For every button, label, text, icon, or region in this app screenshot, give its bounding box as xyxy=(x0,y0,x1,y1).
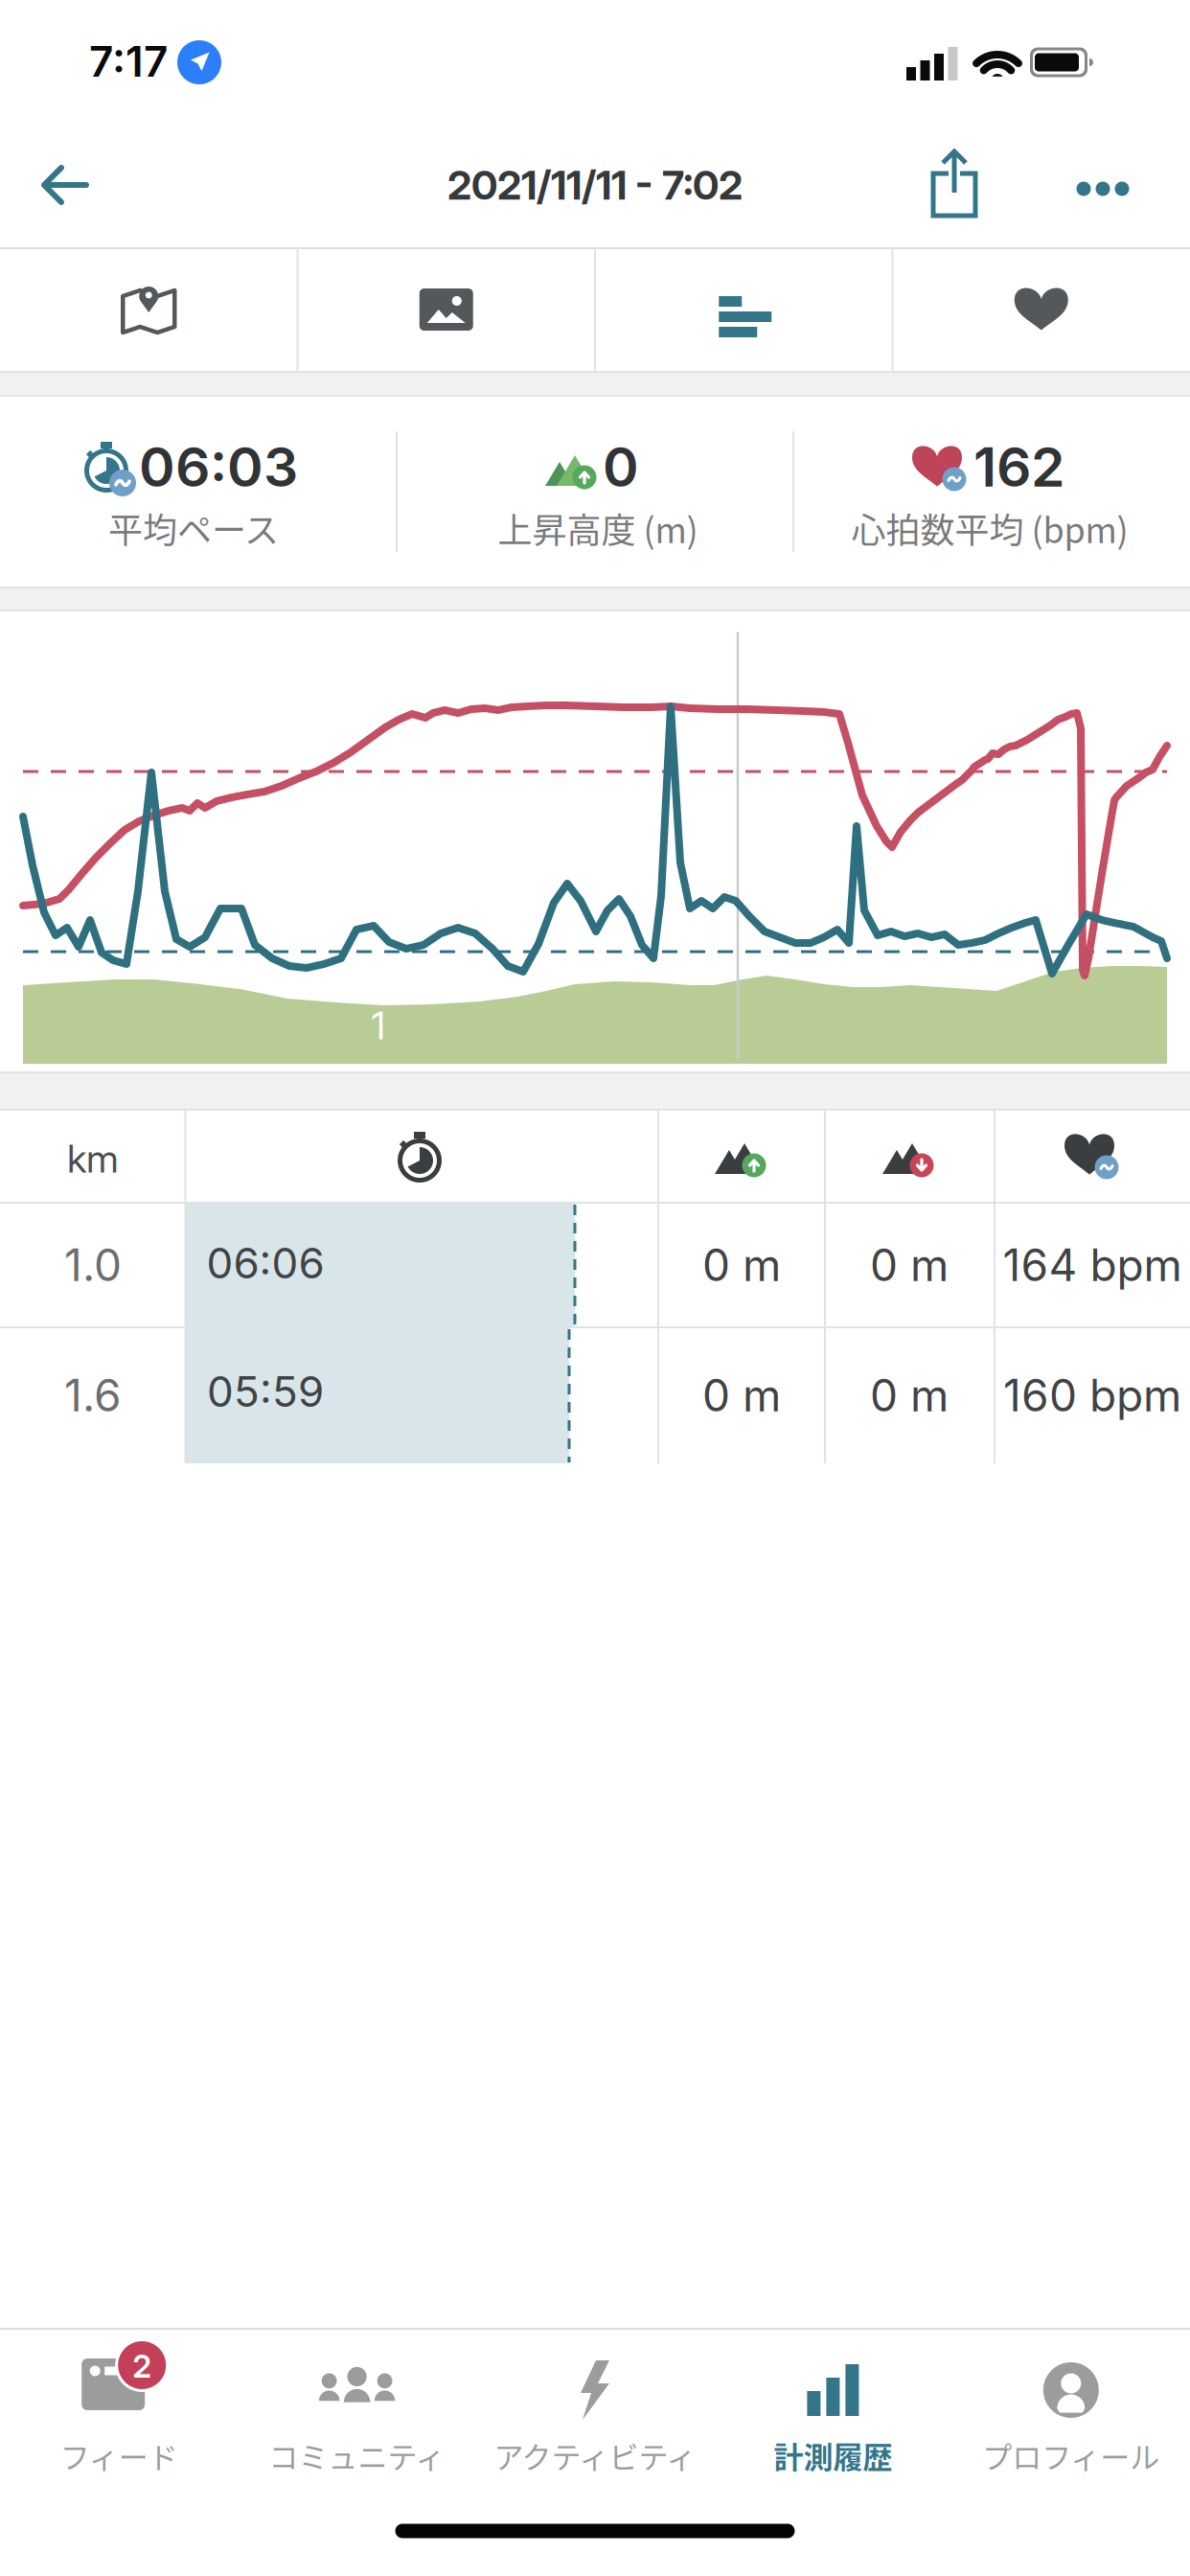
staticText: 05:59 xyxy=(207,1366,324,1417)
staticText: 0 xyxy=(603,434,639,500)
staticText: 2 xyxy=(132,2347,152,2385)
staticText: 0 m xyxy=(702,1369,781,1422)
staticText: 1 xyxy=(371,1002,386,1049)
button[interactable]: Feed xyxy=(0,2331,238,2513)
staticText: 0 m xyxy=(870,1238,949,1292)
staticText: 0 m xyxy=(702,1238,781,1292)
button[interactable]: Community xyxy=(238,2331,476,2513)
staticText: 06:06 xyxy=(206,1238,324,1289)
button[interactable]: Photos xyxy=(298,248,595,371)
staticText: 162 xyxy=(973,434,1065,500)
staticText: 平均ペース xyxy=(108,503,279,553)
button[interactable]: Share xyxy=(922,149,987,221)
button[interactable]: Likes xyxy=(893,248,1190,371)
button[interactable]: Profile xyxy=(952,2331,1190,2513)
staticText: 7:17 xyxy=(89,36,168,87)
staticText: 1.0 xyxy=(64,1238,122,1292)
button[interactable]: More xyxy=(1074,170,1132,208)
staticText: 0 m xyxy=(870,1369,949,1422)
button[interactable]: Map xyxy=(0,248,297,371)
button[interactable]: Back xyxy=(31,156,100,214)
staticText: 計測履歴 xyxy=(774,2434,892,2477)
staticText: プロフィール xyxy=(982,2434,1160,2477)
staticText: アクティビティ xyxy=(494,2434,696,2477)
button[interactable]: Activity xyxy=(476,2331,714,2513)
staticText: 上昇高度 (m) xyxy=(498,503,698,553)
staticText: km xyxy=(67,1135,119,1182)
button[interactable]: History xyxy=(714,2331,952,2513)
button[interactable]: Splits xyxy=(595,248,892,371)
staticText: コミュニティ xyxy=(269,2434,445,2477)
staticText: 06:03 xyxy=(139,434,298,500)
staticText: フィード xyxy=(60,2434,178,2477)
staticText: 2021/11/11 - 7:02 xyxy=(447,161,743,209)
staticText: 心拍数平均 (bpm) xyxy=(851,503,1128,553)
staticText: 1.6 xyxy=(64,1369,122,1422)
staticText: 160 bpm xyxy=(1003,1369,1181,1422)
staticText: 164 bpm xyxy=(1003,1238,1182,1292)
